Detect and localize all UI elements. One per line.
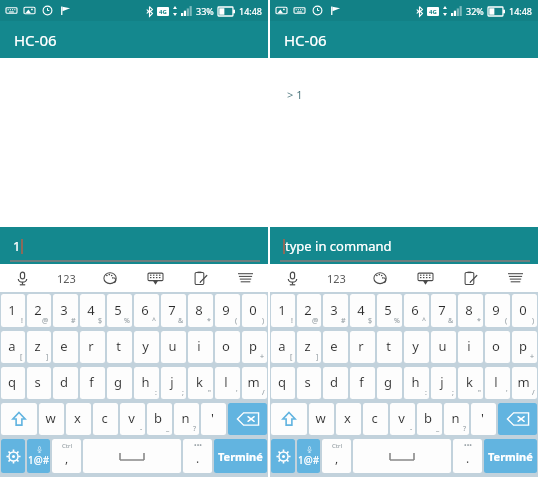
button[interactable]: t (377, 331, 402, 363)
button[interactable]: 123 (314, 264, 358, 292)
button[interactable]: j (161, 367, 186, 399)
button[interactable]: 7 (431, 294, 456, 327)
button[interactable]: c (93, 403, 118, 435)
button[interactable]: m (242, 367, 267, 399)
button[interactable]: 0 (242, 294, 267, 327)
button[interactable]: z (27, 331, 51, 363)
button[interactable]: 9 (215, 294, 240, 327)
button[interactable]: w (309, 403, 334, 435)
button[interactable]: n (444, 403, 469, 435)
button[interactable]: 2 (297, 294, 321, 327)
button[interactable]: x (336, 403, 361, 435)
button[interactable]: 7 (161, 294, 186, 327)
button[interactable]: r (350, 331, 375, 363)
button[interactable]: 8 (188, 294, 213, 327)
button[interactable]: Space (83, 439, 181, 473)
button[interactable]: Emoji (88, 264, 133, 292)
button[interactable]: s (27, 367, 51, 399)
button[interactable]: f (350, 367, 375, 399)
button[interactable]: 1 (0, 227, 268, 264)
button[interactable]: Backspace (498, 403, 537, 435)
button[interactable]: Shift (271, 403, 307, 435)
button[interactable]: r (80, 331, 105, 363)
button[interactable]: h (404, 367, 429, 399)
button[interactable]: p (242, 331, 267, 363)
button[interactable]: 9 (485, 294, 510, 327)
button[interactable]: HC-06 (0, 21, 268, 58)
button[interactable]: 6 (134, 294, 159, 327)
button[interactable]: k (458, 367, 483, 399)
button[interactable]: ' (201, 403, 226, 435)
button[interactable]: 4 (80, 294, 105, 327)
button[interactable]: l (485, 367, 510, 399)
button[interactable]: w (39, 403, 64, 435)
button[interactable]: e (323, 331, 348, 363)
button[interactable]: 123 (44, 264, 88, 292)
button[interactable]: 6 (404, 294, 429, 327)
button[interactable]: d (53, 367, 78, 399)
button[interactable]: c (363, 403, 388, 435)
button[interactable]: k (188, 367, 213, 399)
button[interactable]: ••• (183, 439, 212, 473)
button[interactable]: Emoji (358, 264, 403, 292)
button[interactable]: 1 (271, 294, 295, 327)
button[interactable]: type in command (270, 227, 538, 264)
button[interactable]: p (512, 331, 537, 363)
button[interactable]: 0 (512, 294, 537, 327)
button[interactable]: Keyboard layout (403, 264, 448, 292)
button[interactable]: i (458, 331, 483, 363)
button[interactable]: HC-06 (270, 21, 538, 58)
button[interactable]: Terminé (214, 439, 267, 473)
button[interactable]: f (80, 367, 105, 399)
button[interactable]: Symbols (27, 439, 50, 473)
button[interactable]: a (271, 331, 295, 363)
button[interactable]: Backspace (228, 403, 267, 435)
button[interactable]: q (271, 367, 295, 399)
button[interactable]: 8 (458, 294, 483, 327)
button[interactable]: Voice input (270, 264, 314, 292)
button[interactable]: b (147, 403, 172, 435)
button[interactable]: Keyboard layout (133, 264, 178, 292)
button[interactable]: b (417, 403, 442, 435)
button[interactable]: v (390, 403, 415, 435)
button[interactable]: 5 (377, 294, 402, 327)
button[interactable]: o (215, 331, 240, 363)
button[interactable]: 4 (350, 294, 375, 327)
button[interactable]: ••• (453, 439, 482, 473)
button[interactable]: u (431, 331, 456, 363)
button[interactable]: Voice input (0, 264, 44, 292)
button[interactable]: i (188, 331, 213, 363)
button[interactable]: Clipboard (448, 264, 493, 292)
button[interactable]: e (53, 331, 78, 363)
button[interactable]: o (485, 331, 510, 363)
button[interactable]: Menu (493, 264, 538, 292)
button[interactable]: Settings (1, 439, 25, 473)
button[interactable]: Shift (1, 403, 37, 435)
button[interactable]: Ctrl (322, 439, 351, 473)
button[interactable]: y (404, 331, 429, 363)
button[interactable]: m (512, 367, 537, 399)
button[interactable]: v (120, 403, 145, 435)
button[interactable]: s (297, 367, 321, 399)
button[interactable]: 3 (53, 294, 78, 327)
button[interactable]: g (377, 367, 402, 399)
button[interactable]: Menu (223, 264, 268, 292)
button[interactable]: Terminé (484, 439, 537, 473)
button[interactable]: n (174, 403, 199, 435)
button[interactable]: ' (471, 403, 496, 435)
button[interactable]: x (66, 403, 91, 435)
button[interactable]: Symbols (297, 439, 320, 473)
button[interactable]: q (1, 367, 25, 399)
button[interactable]: Ctrl (52, 439, 81, 473)
button[interactable]: g (107, 367, 132, 399)
button[interactable]: Settings (271, 439, 295, 473)
button[interactable]: a (1, 331, 25, 363)
button[interactable]: Space (353, 439, 451, 473)
button[interactable]: u (161, 331, 186, 363)
button[interactable]: d (323, 367, 348, 399)
button[interactable]: y (134, 331, 159, 363)
button[interactable]: 1 (1, 294, 25, 327)
button[interactable]: 5 (107, 294, 132, 327)
button[interactable]: 3 (323, 294, 348, 327)
button[interactable]: Clipboard (178, 264, 223, 292)
